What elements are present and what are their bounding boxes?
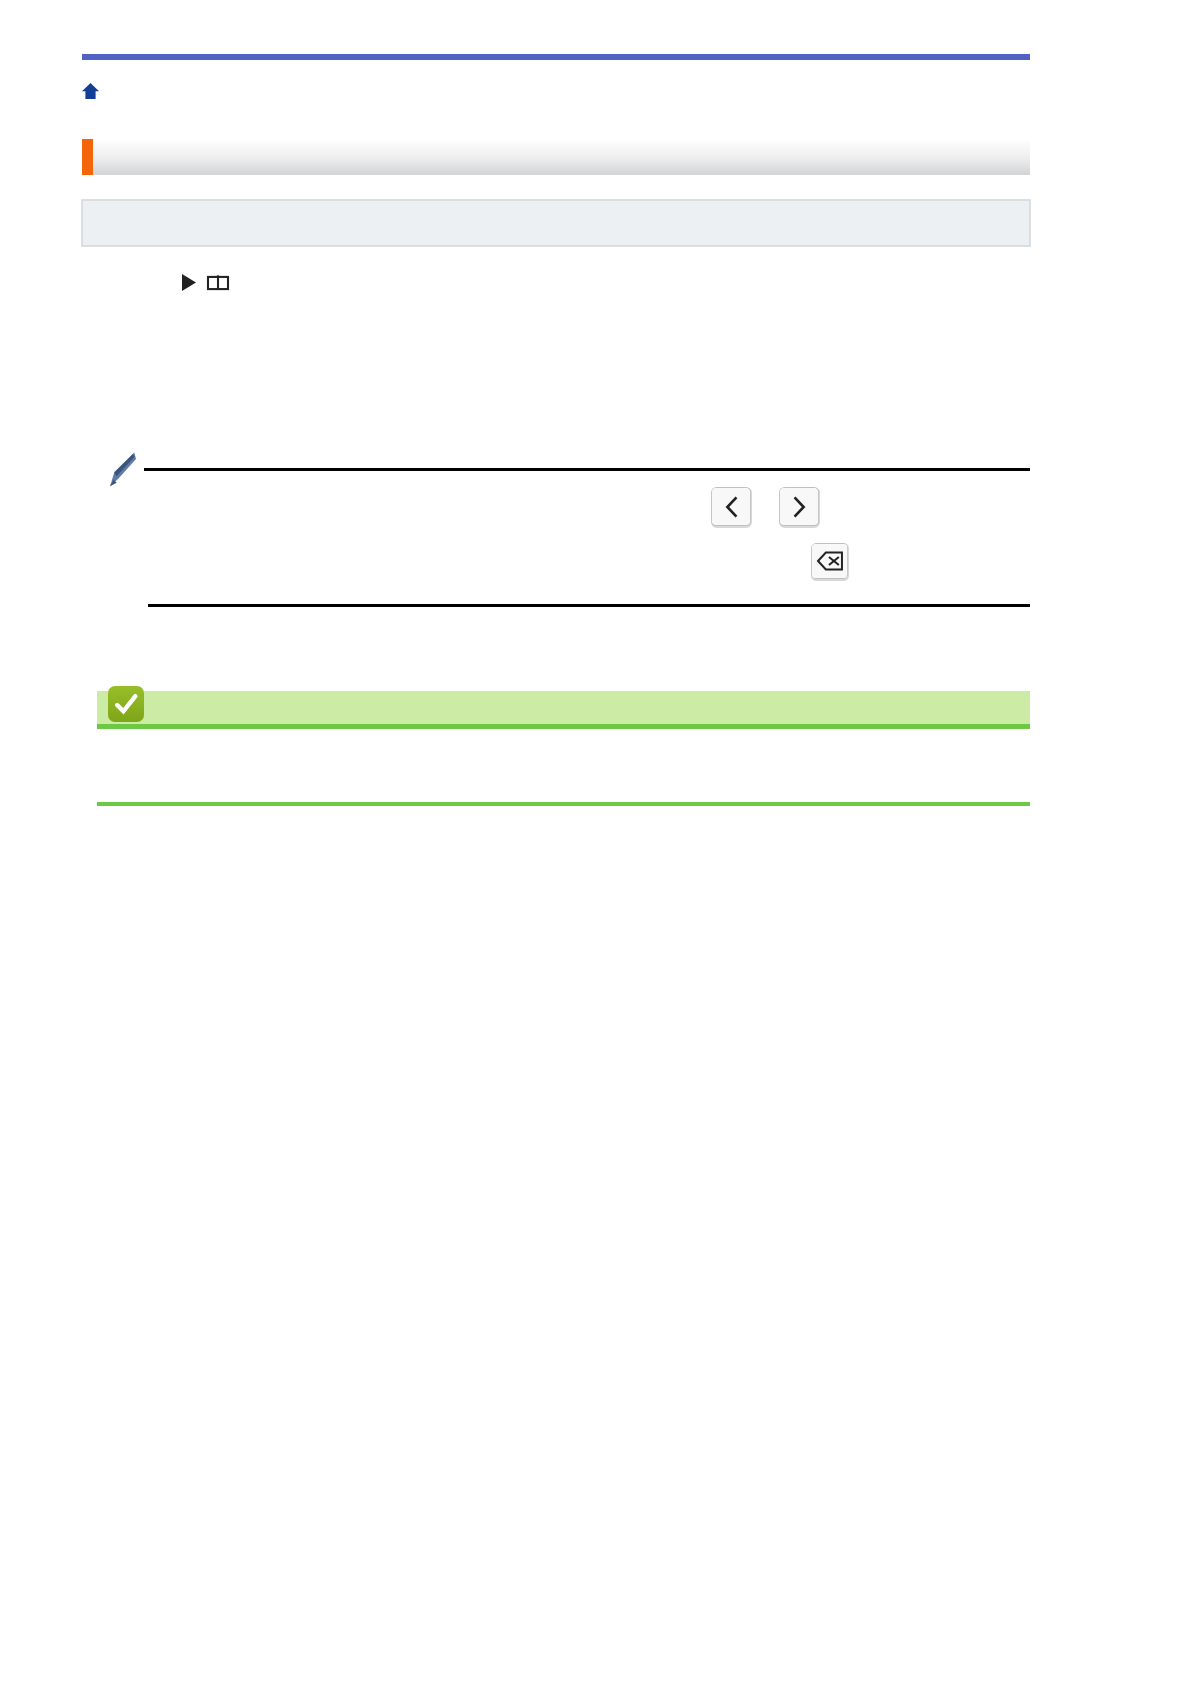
button[interactable]: Backspace (811, 543, 849, 581)
button[interactable]: Home (82, 83, 99, 99)
button[interactable]: Previous (711, 487, 752, 528)
button[interactable]: Next (779, 487, 820, 528)
